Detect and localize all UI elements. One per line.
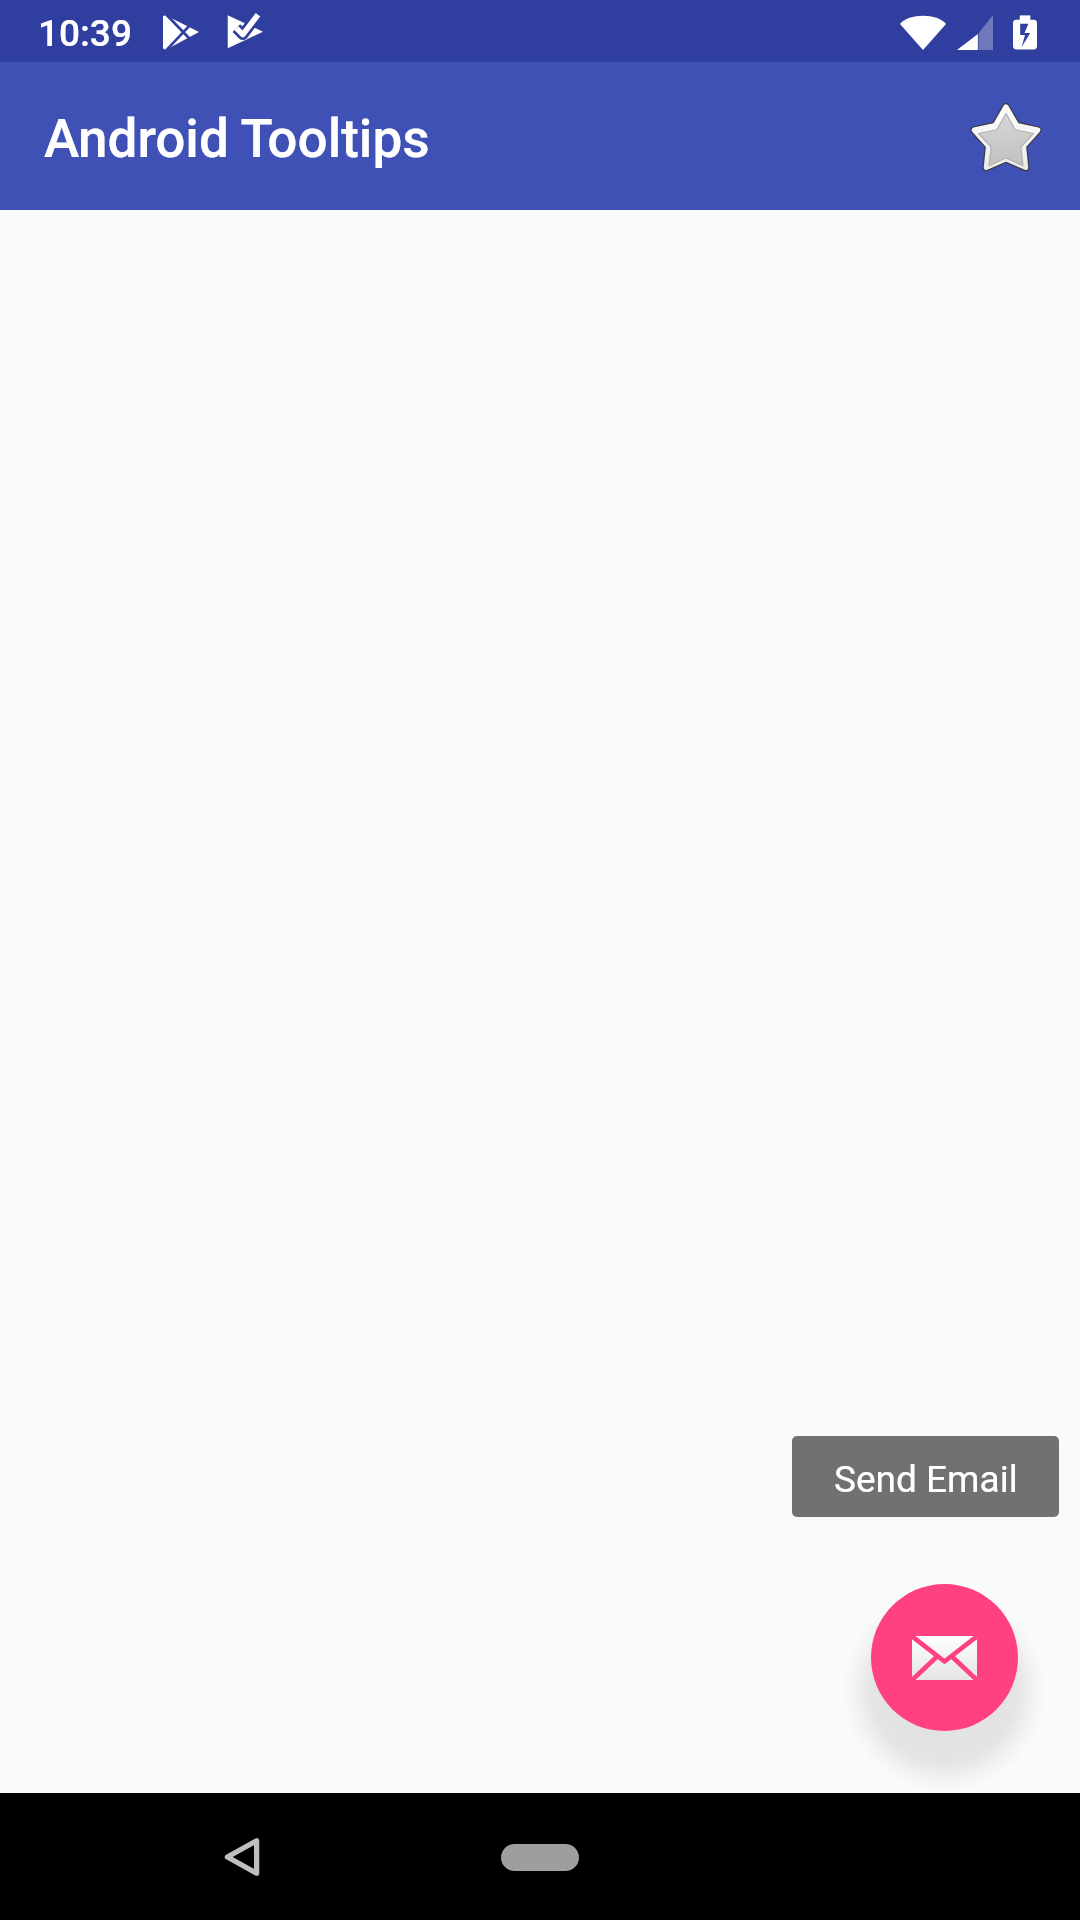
button[interactable]: Send Email — [792, 1436, 1059, 1517]
button[interactable]: Back — [192, 1807, 292, 1907]
button[interactable]: Send Email — [871, 1584, 1018, 1731]
staticText: Send Email — [834, 1458, 1018, 1501]
staticText: 10:39 — [38, 12, 132, 55]
button[interactable]: Home — [470, 1822, 610, 1892]
button[interactable]: Favorite — [943, 75, 1069, 201]
staticText: Android Tooltips — [44, 108, 430, 170]
